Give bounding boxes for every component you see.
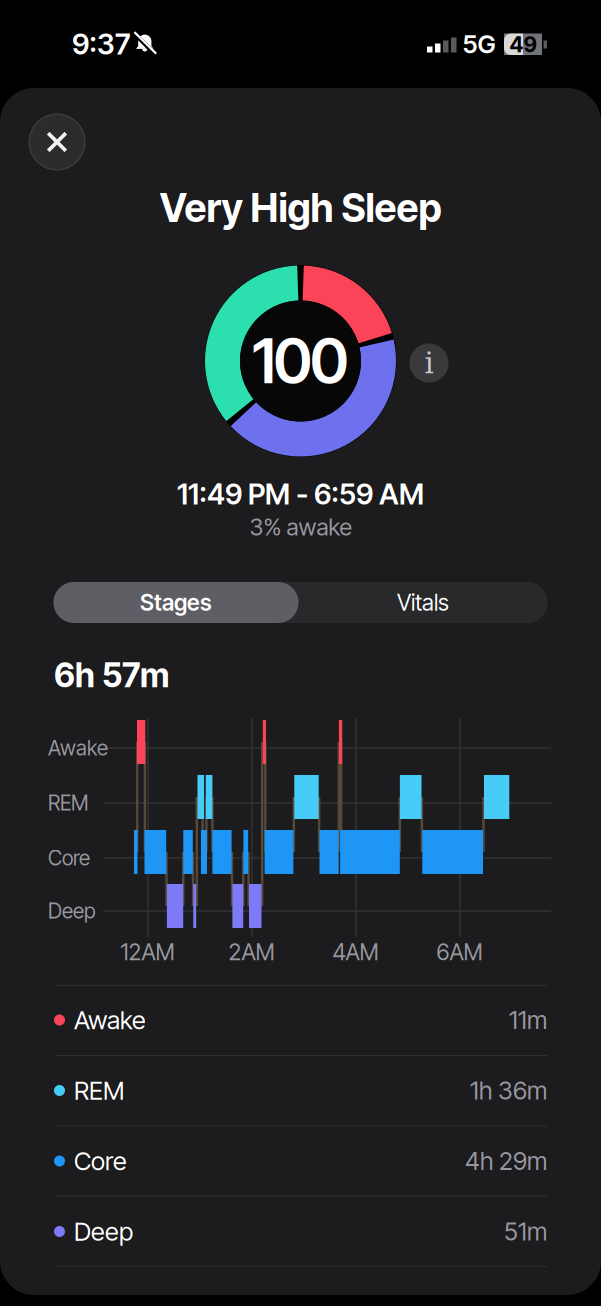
button[interactable]: About this score (409, 343, 448, 382)
staticText: Vitals (397, 589, 449, 616)
staticText: Very High Sleep (159, 185, 441, 231)
staticText: 4h 29m (465, 1146, 547, 1176)
staticText: 2AM (228, 938, 274, 966)
staticText: 1h 36m (470, 1076, 547, 1105)
staticText: REM (48, 790, 88, 815)
staticText: 49 (509, 32, 536, 57)
staticText: Deep (48, 898, 96, 923)
staticText: Deep (74, 1216, 133, 1247)
staticText: Core (74, 1146, 127, 1176)
staticText: REM (74, 1075, 124, 1106)
staticText: i (424, 346, 433, 380)
staticText: Stages (140, 589, 212, 616)
staticText: 100 (252, 324, 349, 398)
staticText: 51m (504, 1217, 547, 1246)
staticText: 3% awake (249, 513, 351, 541)
staticText: 11:49 PM - 6:59 AM (177, 477, 424, 511)
staticText: Awake (74, 1005, 146, 1035)
button[interactable]: Stages (53, 582, 298, 623)
staticText: Awake (48, 735, 108, 760)
staticText: 6h 57m (54, 655, 169, 695)
staticText: 9:37 (72, 27, 130, 61)
staticText: 5G (462, 29, 495, 59)
staticText: Core (48, 845, 90, 870)
staticText: 6AM (436, 938, 482, 966)
staticText: 11m (509, 1005, 547, 1035)
button[interactable]: Vitals (298, 582, 547, 623)
staticText: 12AM (120, 938, 174, 966)
staticText: 4AM (332, 938, 378, 966)
button[interactable]: Close (28, 113, 85, 170)
